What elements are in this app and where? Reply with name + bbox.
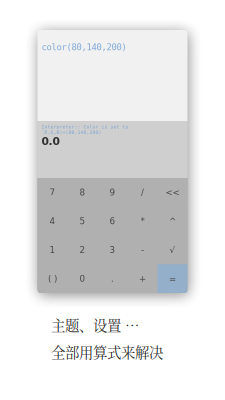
- button[interactable]: 4: [37, 207, 67, 236]
- button[interactable]: 7: [37, 178, 67, 207]
- staticText: 全部用算式来解决: [51, 341, 163, 362]
- staticText: .: [111, 274, 114, 284]
- staticText: 3: [109, 245, 115, 255]
- button[interactable]: +: [127, 264, 157, 293]
- staticText: /: [141, 187, 144, 197]
- staticText: color(80,140,200): [41, 42, 126, 52]
- button[interactable]: ^: [157, 207, 187, 236]
- staticText: -: [141, 245, 144, 255]
- staticText: 主题、设置 ⋯: [51, 315, 139, 335]
- button[interactable]: 6: [97, 207, 127, 236]
- staticText: 2: [79, 245, 85, 255]
- button[interactable]: =: [157, 264, 187, 293]
- button[interactable]: /: [127, 178, 157, 207]
- staticText: =: [169, 274, 176, 284]
- staticText: 9: [109, 187, 115, 197]
- button[interactable]: 2: [67, 235, 97, 264]
- button[interactable]: *: [127, 207, 157, 236]
- staticText: *: [140, 216, 144, 226]
- staticText: 6: [109, 216, 115, 226]
- staticText: 8: [79, 187, 85, 197]
- button[interactable]: -: [127, 235, 157, 264]
- staticText: ( ): [48, 274, 57, 284]
- staticText: <<: [165, 187, 179, 197]
- staticText: Interpreter:: Color is set to: [41, 124, 128, 130]
- button[interactable]: 3: [97, 235, 127, 264]
- staticText: 7: [49, 187, 55, 197]
- staticText: ^: [169, 216, 176, 226]
- staticText: +: [139, 274, 146, 284]
- button[interactable]: 5: [67, 207, 97, 236]
- button[interactable]: ( ): [37, 264, 67, 293]
- button[interactable]: 8: [67, 178, 97, 207]
- button[interactable]: 0: [67, 264, 97, 293]
- button[interactable]: 1: [37, 235, 67, 264]
- staticText: 1: [49, 245, 55, 255]
- button[interactable]: √: [157, 235, 187, 264]
- staticText: 4: [49, 216, 55, 226]
- staticText: 0: [79, 274, 85, 284]
- staticText: (R,G,B)=(80,140,200): [41, 130, 101, 135]
- staticText: 0.0: [41, 135, 59, 148]
- staticText: √: [169, 245, 175, 255]
- button[interactable]: <<: [157, 178, 187, 207]
- button[interactable]: 9: [97, 178, 127, 207]
- staticText: 5: [79, 216, 85, 226]
